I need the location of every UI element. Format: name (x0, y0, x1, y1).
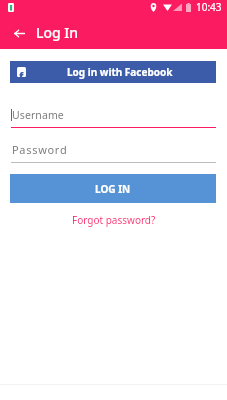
button[interactable]: Forgot password? (72, 213, 156, 227)
button[interactable]: Log in with Facebook (10, 61, 216, 83)
staticText: Log In (36, 23, 79, 42)
button[interactable]: Back (4, 18, 34, 48)
staticText: f (19, 68, 24, 77)
staticText: Password (12, 142, 68, 157)
staticText: Log in with Facebook (67, 65, 173, 79)
staticText: 10:43 (196, 0, 222, 14)
staticText: LOG IN (95, 182, 131, 196)
staticText: Username (12, 108, 64, 122)
button[interactable]: LOG IN (10, 174, 216, 203)
